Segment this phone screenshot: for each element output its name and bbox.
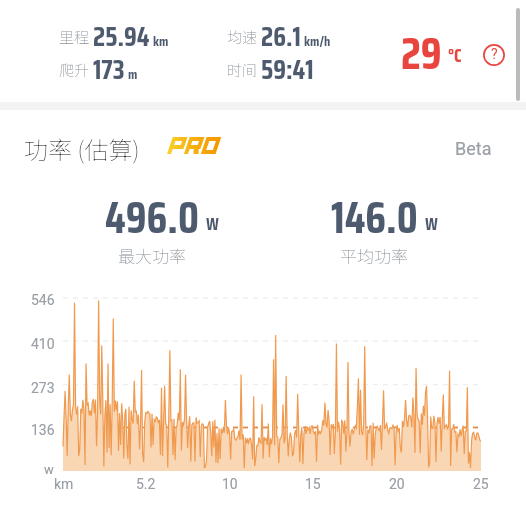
staticText: 29 [401, 19, 442, 88]
staticText: 25 [473, 476, 489, 492]
staticText: km [54, 476, 74, 492]
staticText: 410 [31, 336, 55, 352]
staticText: 25.94 [93, 15, 150, 57]
staticText: 26.1 [261, 15, 301, 57]
staticText: 59:41 [261, 48, 314, 90]
staticText: 273 [31, 380, 55, 396]
staticText: ? [491, 46, 498, 62]
staticText: 20 [389, 476, 405, 492]
staticText: 平均功率 [340, 243, 408, 268]
staticText: 5.2 [136, 476, 156, 492]
staticText: km [153, 30, 169, 52]
staticText: 546 [31, 292, 55, 308]
staticText: 时间 [227, 59, 258, 81]
staticText: 里程 [59, 26, 90, 48]
staticText: Beta [455, 138, 492, 159]
button[interactable]: Help [483, 44, 505, 66]
staticText: m [128, 63, 138, 85]
staticText: °C [448, 40, 462, 70]
staticText: 均速 [227, 26, 258, 48]
staticText: 15 [305, 476, 321, 492]
staticText: 10 [222, 476, 238, 492]
staticText: w [44, 462, 54, 477]
staticText: 功率 (估算) [24, 131, 140, 166]
staticText: 496.0 [105, 183, 199, 252]
staticText: 最大功率 [118, 243, 186, 268]
staticText: 136 [31, 422, 55, 438]
staticText: 146.0 [331, 183, 418, 252]
staticText: 爬升 [59, 59, 90, 81]
staticText: km/h [304, 30, 331, 52]
staticText: 173 [93, 48, 125, 90]
